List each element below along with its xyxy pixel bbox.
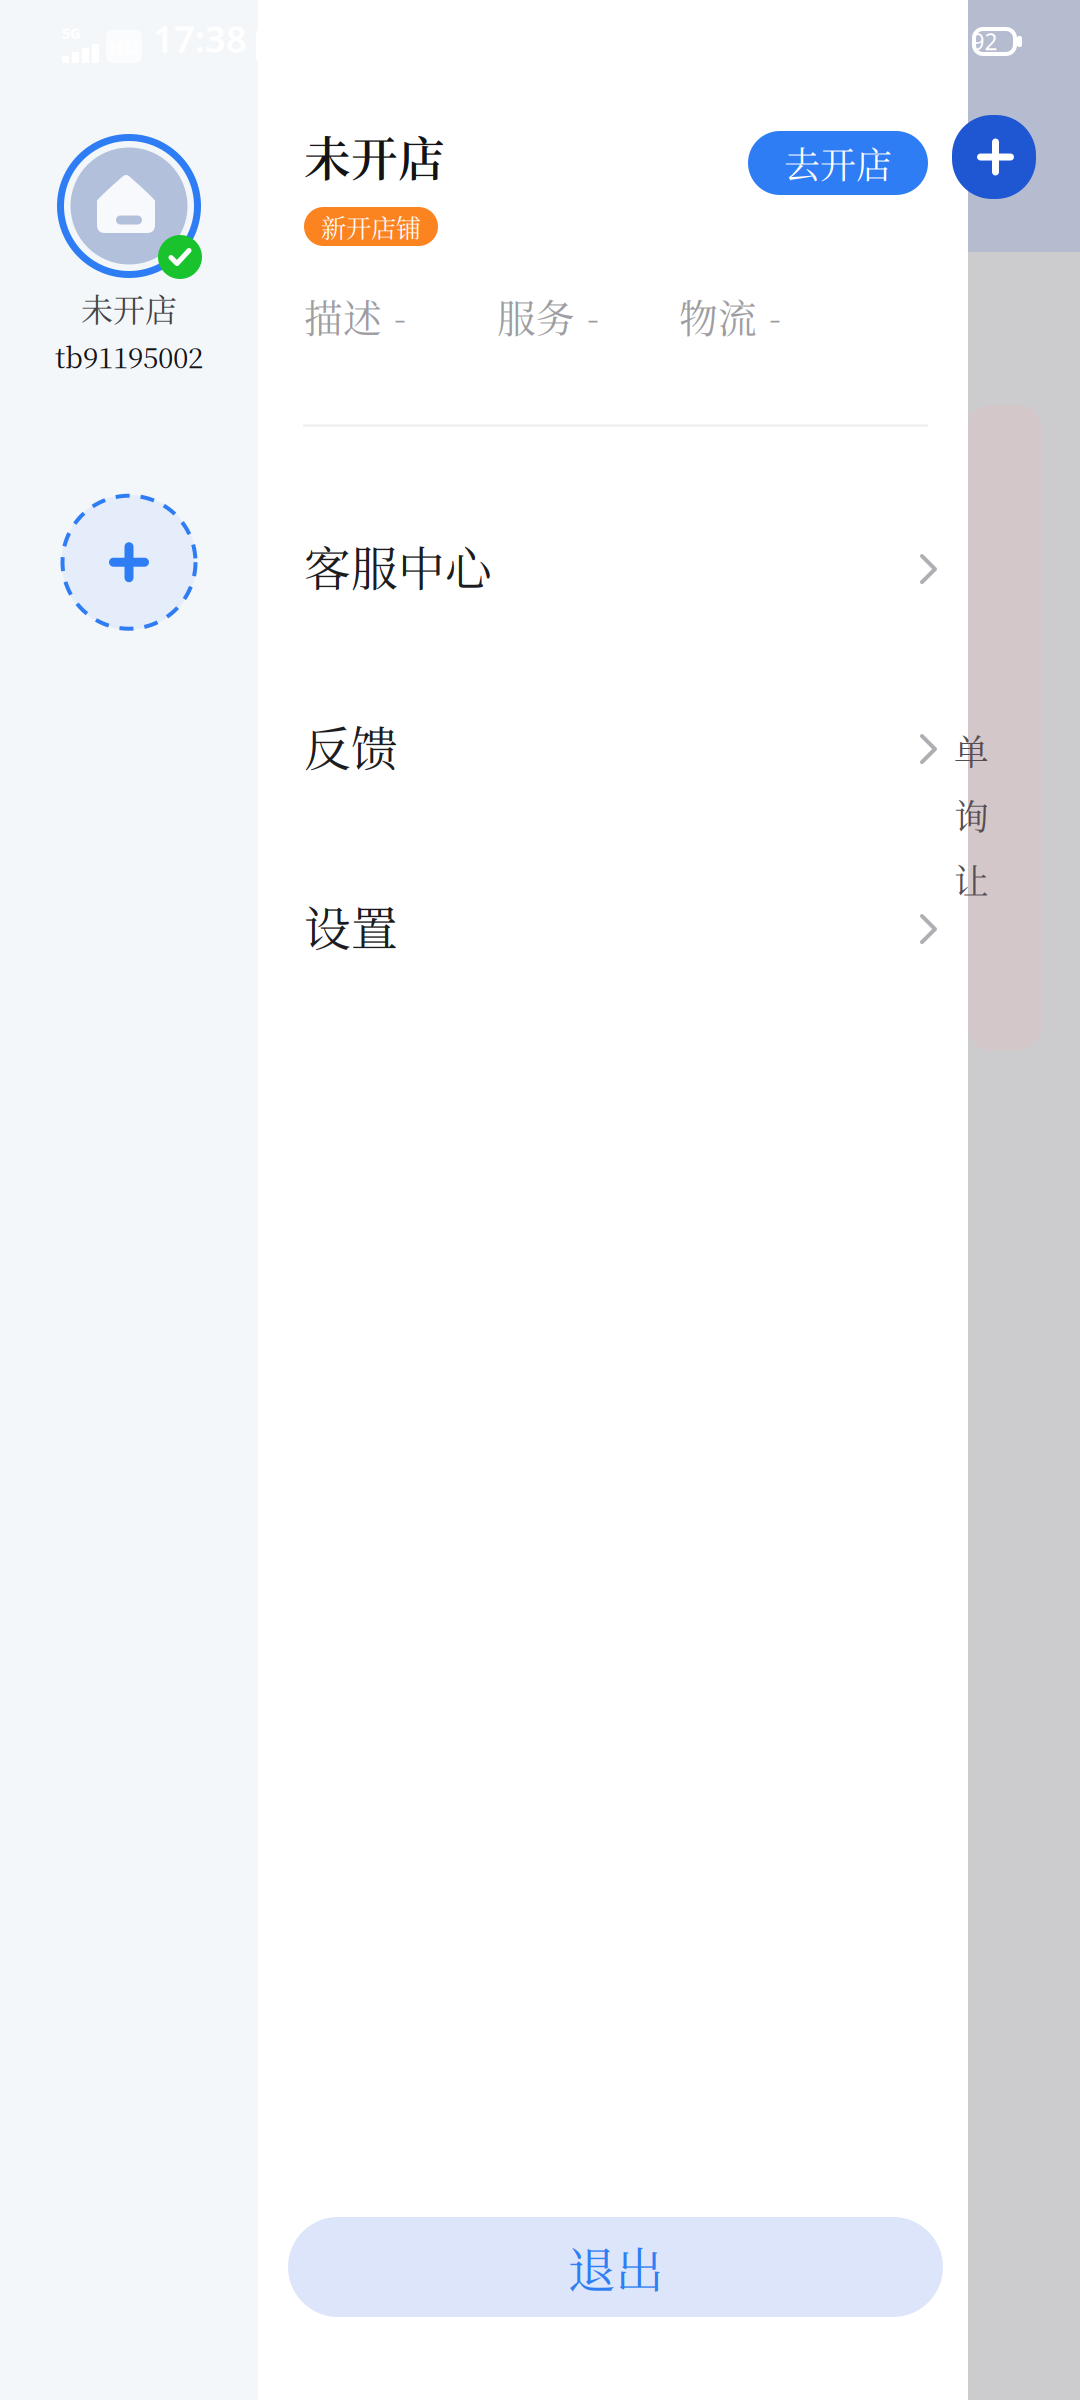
- staticText: -: [394, 291, 406, 341]
- staticText: 去开店: [784, 137, 892, 189]
- staticText: 退出: [567, 2232, 663, 2301]
- staticText: 未开店: [304, 122, 445, 189]
- staticText: -: [587, 291, 599, 341]
- staticText: 客服中心: [304, 532, 492, 599]
- button[interactable]: 去开店: [748, 131, 928, 195]
- staticText: 设置: [304, 892, 398, 959]
- staticText: 服务: [497, 288, 575, 344]
- button[interactable]: 退出: [288, 2217, 943, 2317]
- staticText: 反馈: [304, 712, 398, 779]
- staticText: 物流: [679, 288, 757, 344]
- staticText: 5G: [62, 23, 81, 43]
- staticText: 92: [971, 26, 997, 57]
- button[interactable]: 设置: [258, 836, 968, 1016]
- staticText: 17:38: [153, 14, 247, 63]
- staticText: tb91195002: [55, 336, 203, 376]
- staticText: 未开店: [81, 285, 177, 331]
- button[interactable]: Add account: [59, 492, 199, 632]
- button[interactable]: 客服中心: [258, 476, 968, 656]
- button[interactable]: 反馈: [258, 656, 968, 836]
- staticText: 描述: [304, 288, 382, 344]
- staticText: -: [769, 291, 781, 341]
- button[interactable]: 未开店: [55, 132, 203, 376]
- staticText: 询: [954, 790, 989, 840]
- staticText: 新开店铺: [321, 208, 421, 245]
- staticText: 单: [954, 725, 989, 775]
- staticText: 让: [954, 855, 989, 904]
